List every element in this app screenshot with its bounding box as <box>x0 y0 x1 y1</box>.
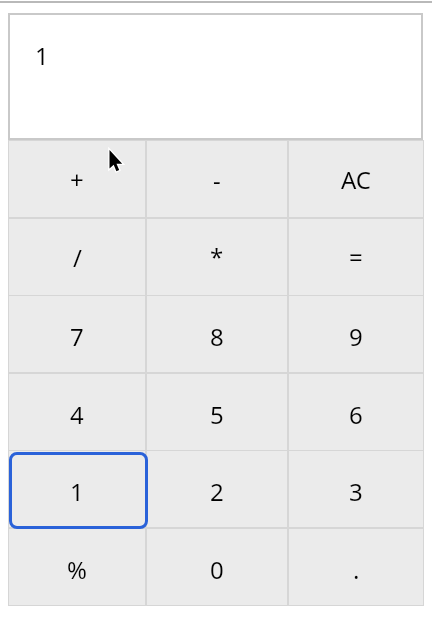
staticText: % <box>67 553 87 586</box>
staticText: 5 <box>210 398 224 431</box>
staticText: 2 <box>210 475 224 508</box>
button[interactable]: - <box>146 140 288 218</box>
button[interactable]: 1 <box>8 450 146 528</box>
button[interactable]: 9 <box>288 295 424 373</box>
button[interactable]: . <box>288 528 424 606</box>
button[interactable]: 2 <box>146 450 288 528</box>
button[interactable]: 5 <box>146 373 288 451</box>
button[interactable]: AC <box>288 140 424 218</box>
button[interactable]: = <box>288 218 424 296</box>
staticText: AC <box>341 163 372 196</box>
staticText: - <box>213 163 221 196</box>
staticText: + <box>70 163 84 196</box>
staticText: * <box>210 240 224 273</box>
staticText: 7 <box>70 320 84 353</box>
staticText: = <box>349 240 363 273</box>
staticText: 0 <box>210 553 224 586</box>
button[interactable]: / <box>8 218 146 296</box>
staticText: . <box>353 553 360 586</box>
button[interactable]: 0 <box>146 528 288 606</box>
staticText: / <box>73 241 82 274</box>
button[interactable]: 7 <box>8 295 146 373</box>
button[interactable]: + <box>8 140 146 218</box>
staticText: 9 <box>349 320 363 353</box>
staticText: 4 <box>70 398 84 431</box>
button[interactable]: 4 <box>8 373 146 451</box>
staticText: 6 <box>349 398 363 431</box>
staticText: 1 <box>70 475 84 508</box>
button[interactable]: 6 <box>288 373 424 451</box>
button[interactable]: * <box>146 218 288 296</box>
button[interactable]: % <box>8 528 146 606</box>
staticText: 3 <box>349 475 363 508</box>
staticText: 8 <box>210 320 224 353</box>
button[interactable]: 3 <box>288 450 424 528</box>
staticText: 1 <box>35 39 49 72</box>
button[interactable]: 8 <box>146 295 288 373</box>
